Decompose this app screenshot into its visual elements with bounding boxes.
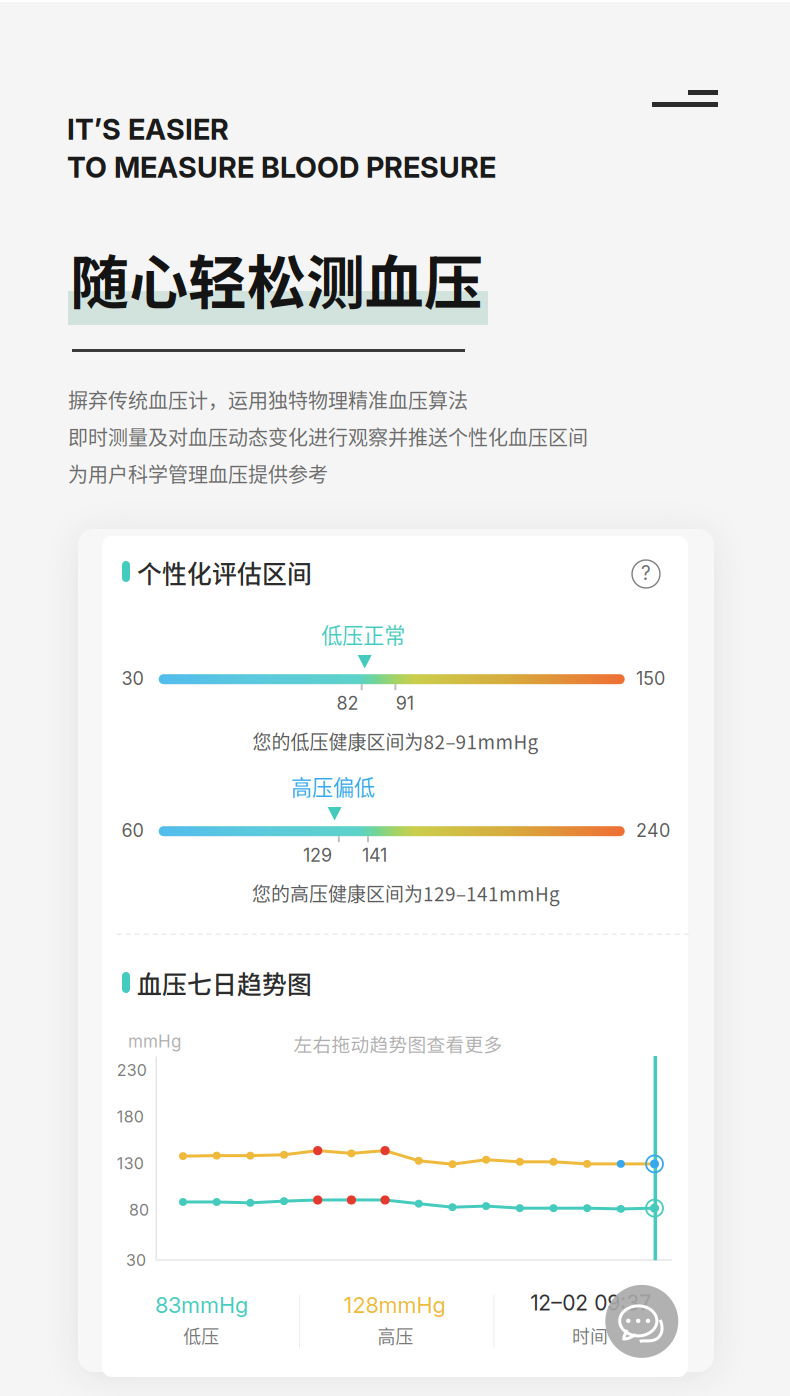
staticText: ? [641,561,651,584]
staticText: IT’S EASIER [67,112,229,147]
staticText: 30 [121,667,143,689]
staticText: 80 [129,1200,149,1220]
staticText: 91 [396,692,414,714]
staticText: 30 [126,1251,146,1270]
staticText: 血压七日趋势图 [137,965,312,1001]
staticText: 即时测量及对血压动态变化进行观察并推送个性化血压区间 [68,422,588,451]
staticText: 240 [636,819,670,841]
staticText: 150 [636,667,665,689]
staticText: 时间 [572,1322,608,1348]
staticText: 您的低压健康区间为82–91mmHg [252,727,538,755]
staticText: 左右拖动趋势图查看更多 [293,1030,502,1057]
button[interactable]: Help [632,560,660,588]
staticText: 60 [121,819,143,841]
button[interactable]: Menu [652,89,718,111]
staticText: 随心轻松测血压 [70,236,483,321]
staticText: 128mmHg [343,1292,445,1318]
staticText: 低压正常 [321,619,405,649]
staticText: 高压偏低 [291,771,375,801]
staticText: 个性化评估区间 [137,554,312,590]
staticText: 230 [117,1061,147,1080]
staticText: mmHg [128,1031,181,1052]
staticText: 高压 [377,1322,413,1348]
staticText: 您的高压健康区间为129–141mmHg [252,879,560,907]
staticText: 低压 [183,1322,219,1348]
staticText: 141 [362,844,387,866]
staticText: 83mmHg [155,1292,248,1318]
staticText: 为用户科学管理血压提供参考 [68,459,328,488]
staticText: 摒弃传统血压计，运用独特物理精准血压算法 [68,385,468,414]
button[interactable]: Customer service chat [605,1285,678,1358]
staticText: TO MEASURE BLOOD PRESURE [67,150,496,185]
staticText: 82 [336,692,358,714]
staticText: 180 [117,1107,144,1126]
staticText: 130 [117,1154,144,1173]
staticText: 129 [303,844,332,866]
staticText: 12–02 09:37 [530,1290,651,1315]
